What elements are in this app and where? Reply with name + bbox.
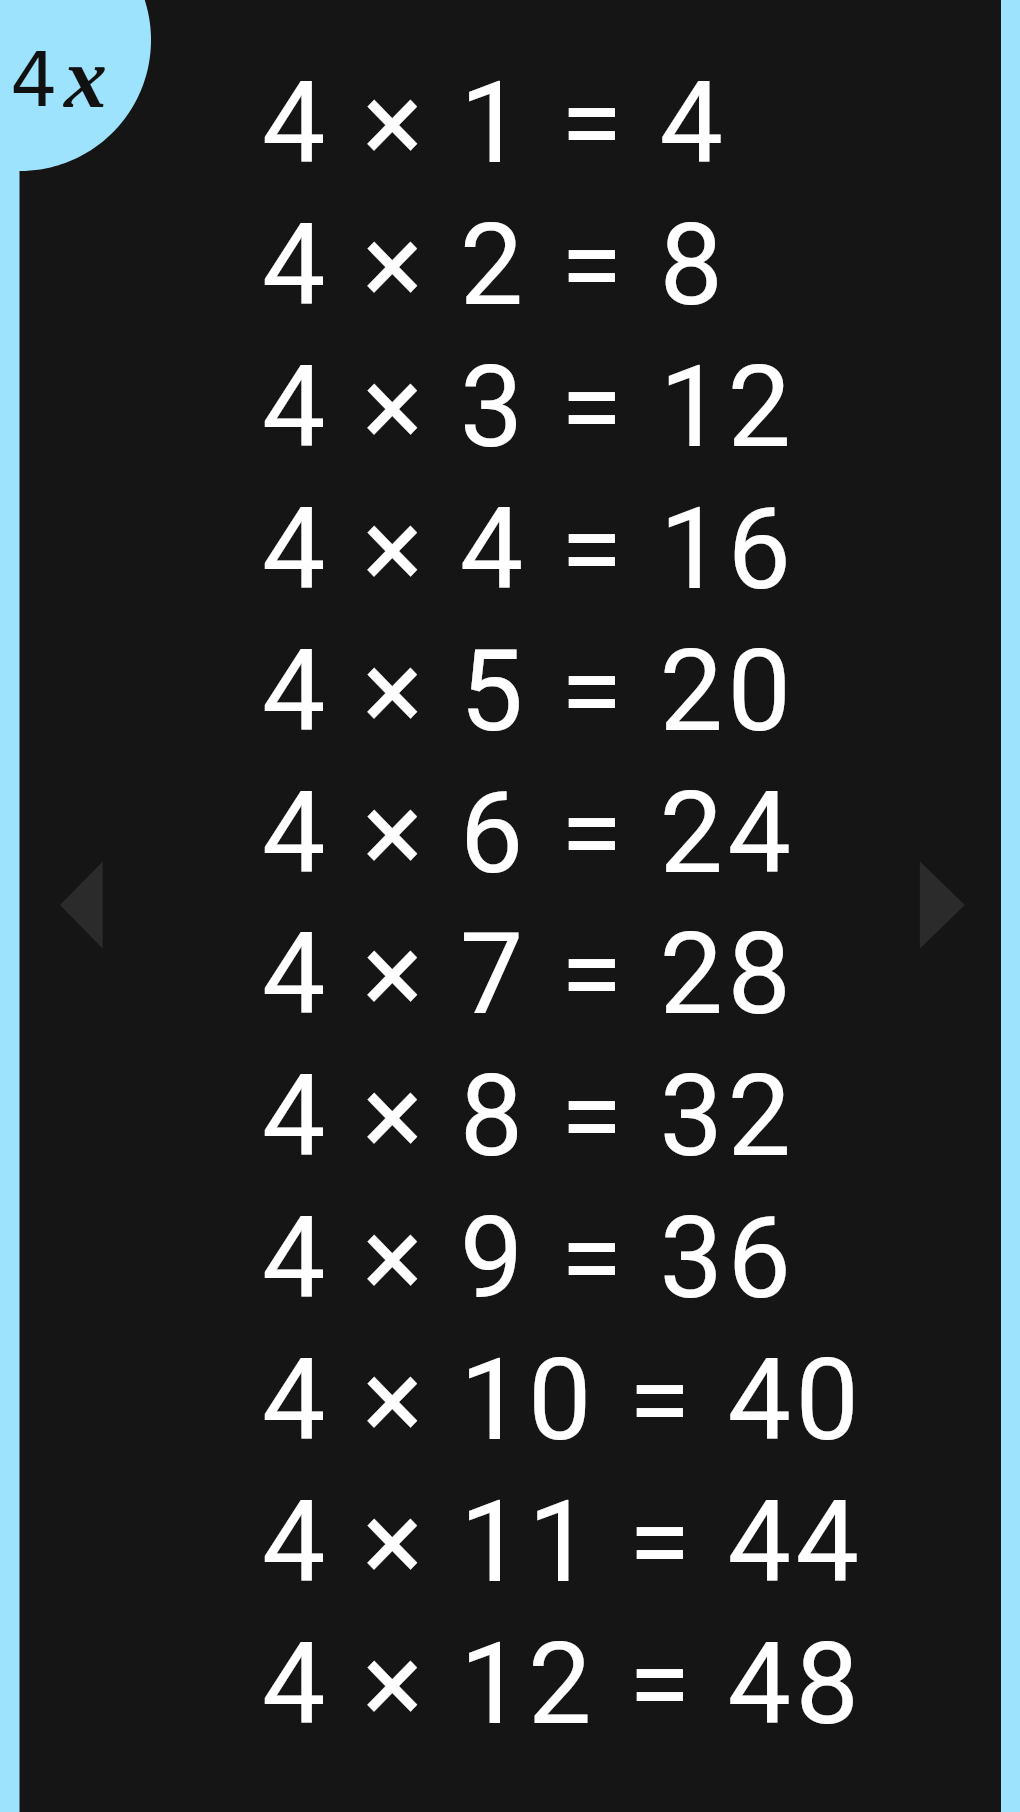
button[interactable]: Next times table	[886, 836, 1000, 974]
button[interactable]: 4 × 12 = 48	[20, 1618, 1002, 1760]
button[interactable]: 4 × 2 = 8	[20, 199, 1002, 341]
button[interactable]: Previous times table	[26, 836, 140, 974]
button[interactable]: 4 × 6 = 24	[20, 767, 1002, 909]
button[interactable]: 4 × 8 = 32	[20, 1050, 1002, 1192]
button[interactable]: 4 × 11 = 44	[20, 1476, 1002, 1618]
button[interactable]: 4 × 3 = 12	[20, 341, 1002, 483]
staticText: 4 × 1 = 4	[262, 57, 728, 189]
button[interactable]: 4 × 10 = 40	[20, 1334, 1002, 1476]
staticText: 4 × 6 = 24	[262, 767, 796, 899]
button[interactable]: 4 × 4 = 16	[20, 483, 1002, 625]
button[interactable]: Times table 4	[0, 20, 120, 120]
staticText: 4 × 7 = 28	[262, 908, 796, 1040]
staticText: 4 × 9 = 36	[262, 1192, 796, 1324]
staticText: 4 × 10 = 40	[262, 1334, 864, 1466]
staticText: 4 × 3 = 12	[262, 341, 796, 473]
staticText: 4	[10, 36, 58, 123]
staticText: 4 × 2 = 8	[262, 199, 728, 331]
staticText: 4 × 5 = 20	[262, 625, 796, 757]
button[interactable]: 4 × 5 = 20	[20, 625, 1002, 767]
button[interactable]: 4 × 7 = 28	[20, 908, 1002, 1050]
staticText: 4 × 4 = 16	[262, 483, 796, 615]
staticText: 4 × 11 = 44	[262, 1476, 864, 1608]
button[interactable]: 4 × 9 = 36	[20, 1192, 1002, 1334]
staticText: x	[64, 30, 107, 125]
button[interactable]: 4 × 1 = 4	[20, 57, 1002, 199]
staticText: 4 × 8 = 32	[262, 1050, 796, 1182]
staticText: 4 × 12 = 48	[262, 1618, 864, 1750]
